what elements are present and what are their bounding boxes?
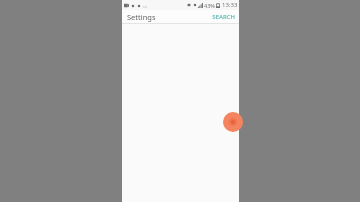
button[interactable]: Add [223, 112, 243, 132]
staticText: 13:33 [222, 1, 238, 9]
button[interactable]: SEARCH [208, 11, 239, 23]
staticText: Settings [127, 12, 156, 22]
staticText: SEARCH [212, 13, 235, 21]
staticText: 43% [204, 2, 215, 9]
